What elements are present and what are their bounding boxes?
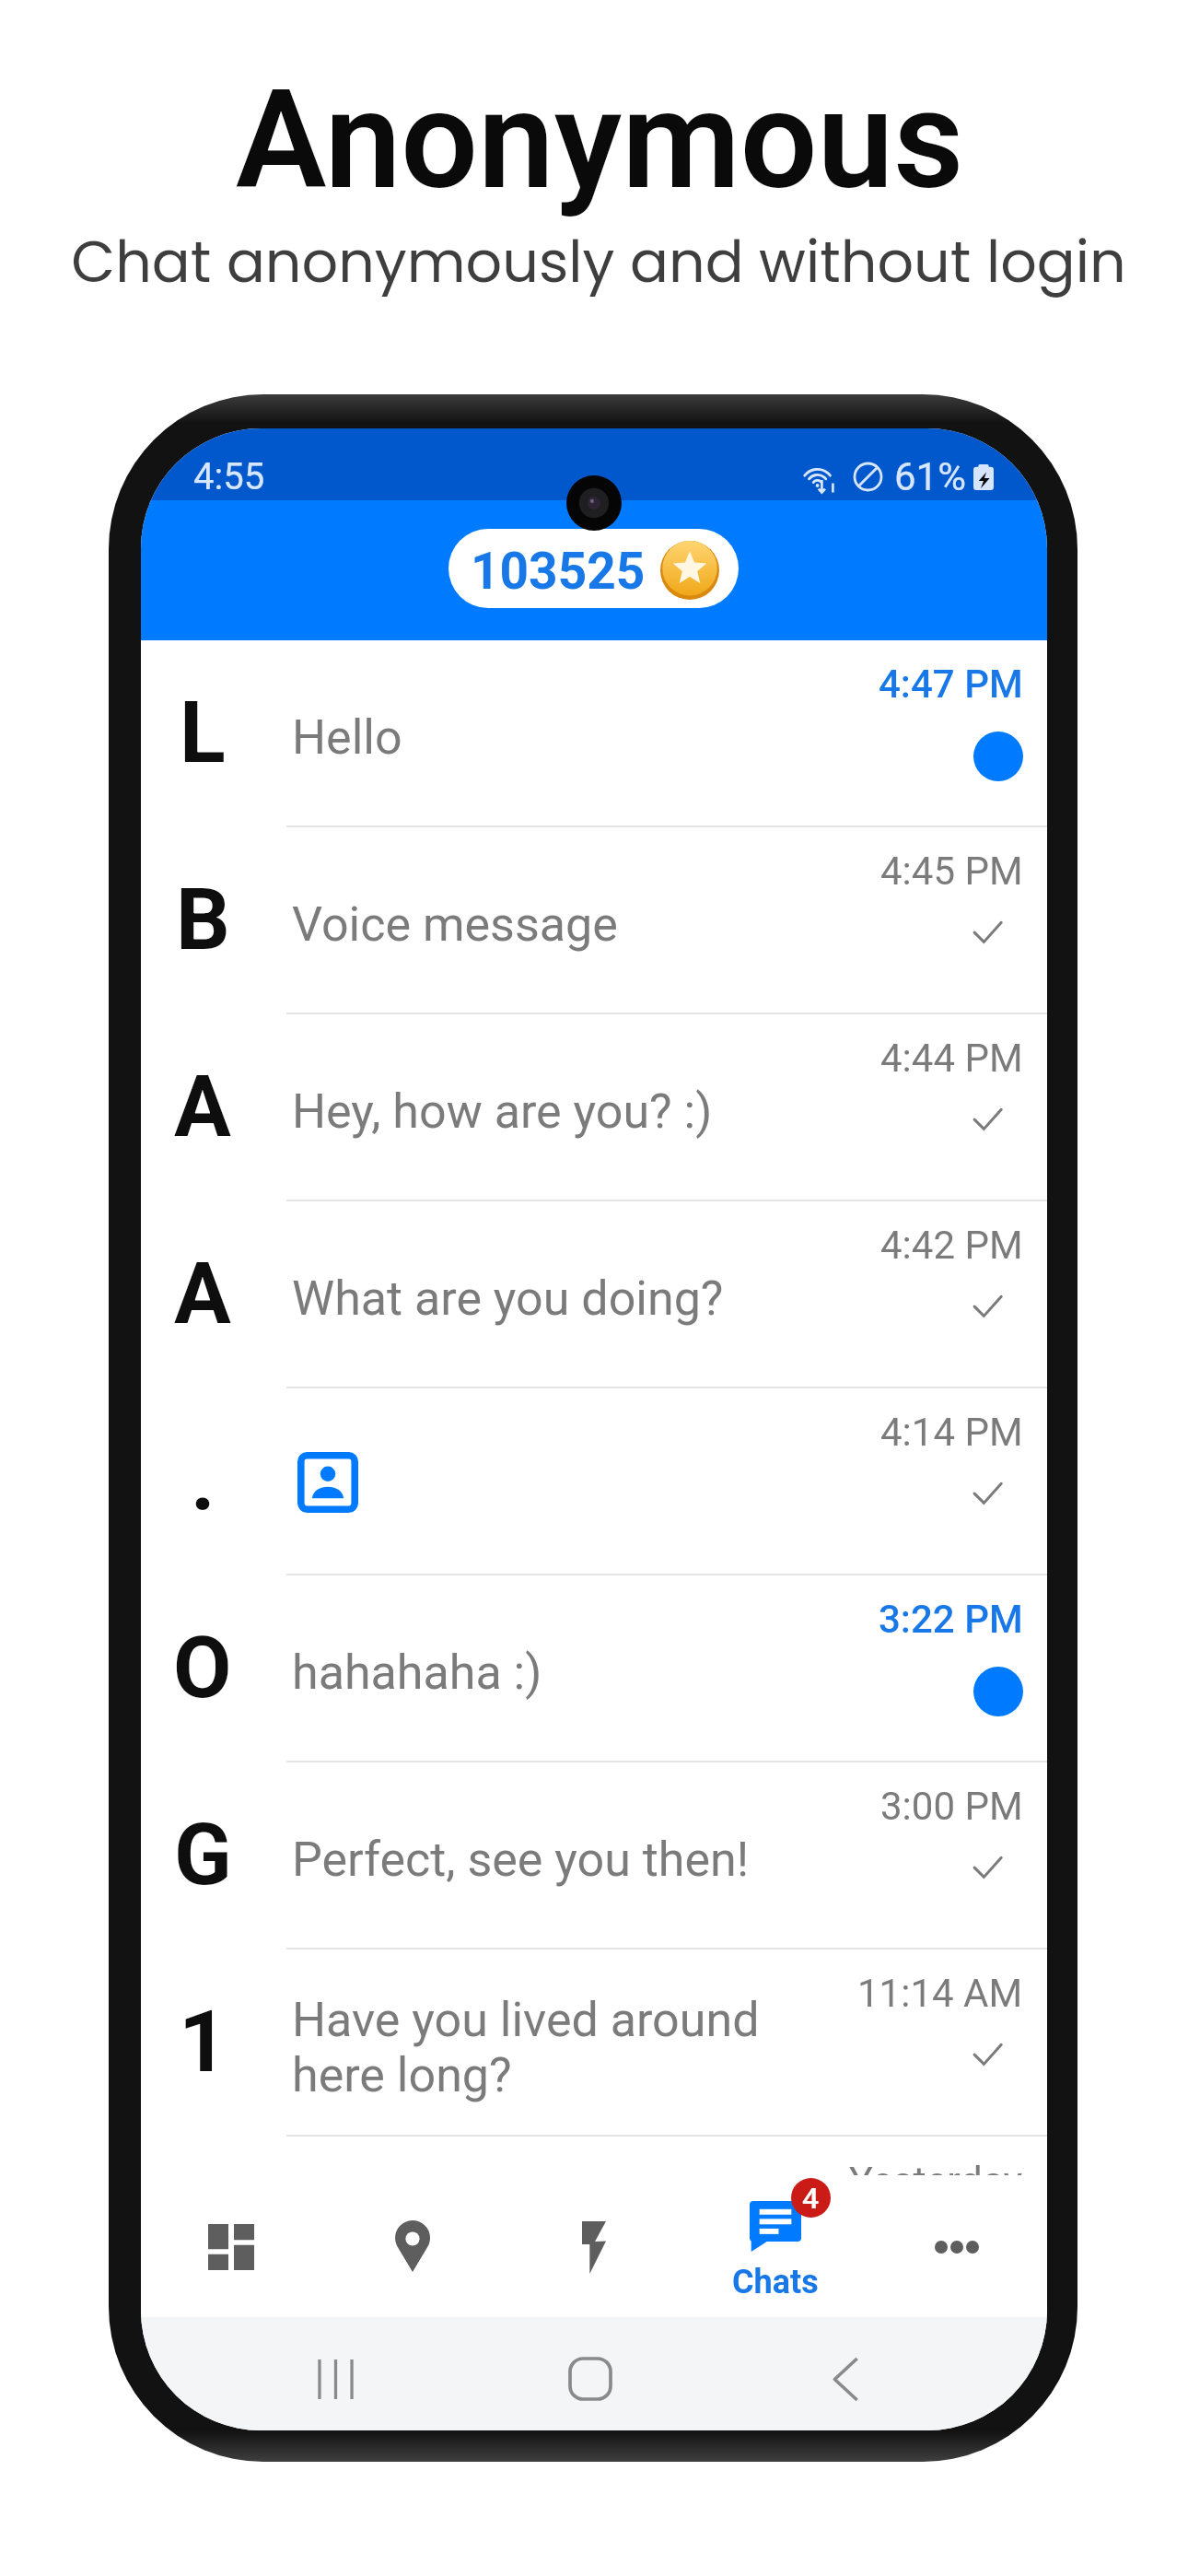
staticText: B — [176, 871, 230, 970]
button[interactable]: L — [141, 640, 1047, 825]
staticText: Chat anonymously and without login — [5, 222, 1188, 302]
staticText: 4:55 — [193, 455, 265, 498]
button[interactable]: Recents — [298, 2342, 372, 2416]
staticText: 11:14 AM — [857, 1971, 1023, 2016]
staticText: 3:00 PM — [880, 1784, 1023, 1829]
staticText: 103525 — [471, 542, 646, 601]
staticText: O — [173, 1619, 232, 1718]
button[interactable]: Places — [321, 2175, 503, 2317]
button[interactable]: Flash — [503, 2175, 684, 2317]
staticText: 4:47 PM — [879, 662, 1023, 707]
staticText: 4:44 PM — [880, 1036, 1023, 1081]
staticText: Have you lived around here long? — [292, 1992, 900, 2102]
staticText: 61% — [894, 454, 966, 499]
staticText: . — [191, 1432, 215, 1531]
staticText: hahahaha :) — [292, 1645, 900, 1701]
button[interactable]: G — [141, 1762, 1047, 1948]
staticText: Anonymous — [6, 61, 1188, 220]
staticText: 4 — [802, 2181, 820, 2216]
staticText: Hello — [292, 709, 900, 766]
staticText: Hey, how are you? :) — [292, 1083, 900, 1140]
button[interactable]: O — [141, 1575, 1047, 1761]
button[interactable]: A — [141, 1201, 1047, 1387]
button[interactable]: Dashboard — [141, 2175, 321, 2317]
button[interactable]: 1 — [141, 1950, 1047, 2135]
staticText: A — [174, 1058, 231, 1157]
staticText: 4:45 PM — [880, 849, 1023, 894]
staticText: Voice message — [292, 896, 900, 953]
staticText: What are you doing? — [292, 1270, 900, 1327]
staticText: 4:14 PM — [880, 1410, 1023, 1455]
staticText: 1 — [179, 1993, 227, 2092]
button[interactable]: 103525 — [448, 529, 739, 608]
staticText: Chats — [732, 2263, 819, 2301]
button[interactable]: 4 — [684, 2175, 866, 2317]
staticText: 4:42 PM — [880, 1223, 1023, 1268]
staticText: 3:22 PM — [879, 1597, 1023, 1642]
staticText: A — [174, 1245, 231, 1344]
staticText: Yesterday — [849, 2158, 1023, 2204]
staticText: L — [180, 684, 226, 783]
button[interactable]: Home — [553, 2342, 627, 2416]
button[interactable]: A — [141, 1014, 1047, 1200]
button[interactable]: . — [141, 1388, 1047, 1574]
button[interactable]: Back — [809, 2342, 882, 2416]
staticText: G — [174, 1806, 232, 1905]
staticText: Perfect, see you then! — [292, 1832, 900, 1888]
button[interactable]: More options — [866, 2175, 1047, 2317]
button[interactable]: B — [141, 827, 1047, 1013]
